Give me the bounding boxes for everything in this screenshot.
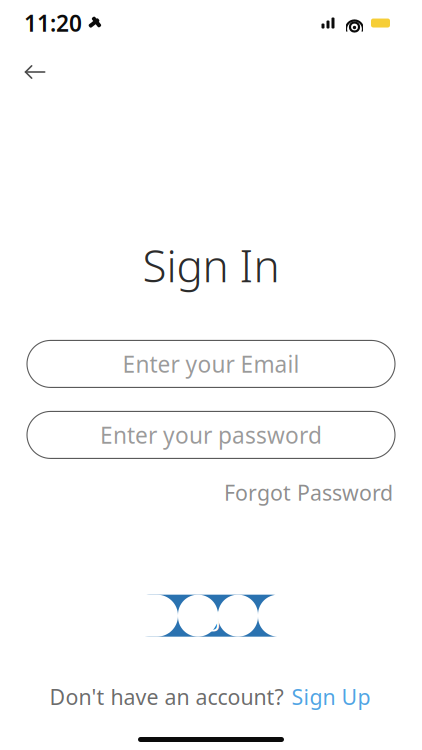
- button[interactable]: Login: [129, 595, 293, 637]
- staticText: Sign In: [142, 236, 279, 294]
- button[interactable]: Sign Up: [289, 679, 372, 715]
- staticText: Forgot Password: [224, 478, 393, 507]
- staticText: Sign Up: [291, 683, 370, 711]
- staticText: Don't have an account?: [49, 683, 283, 711]
- button[interactable]: Forgot Password: [222, 472, 395, 513]
- staticText: 11:20: [24, 8, 82, 38]
- staticText: Login: [177, 599, 244, 632]
- staticText: Enter your password: [100, 420, 322, 450]
- button[interactable]: Back: [12, 52, 58, 92]
- button[interactable]: Enter your password: [27, 411, 395, 458]
- staticText: Enter your Email: [122, 349, 299, 379]
- button[interactable]: Enter your Email: [27, 340, 395, 387]
